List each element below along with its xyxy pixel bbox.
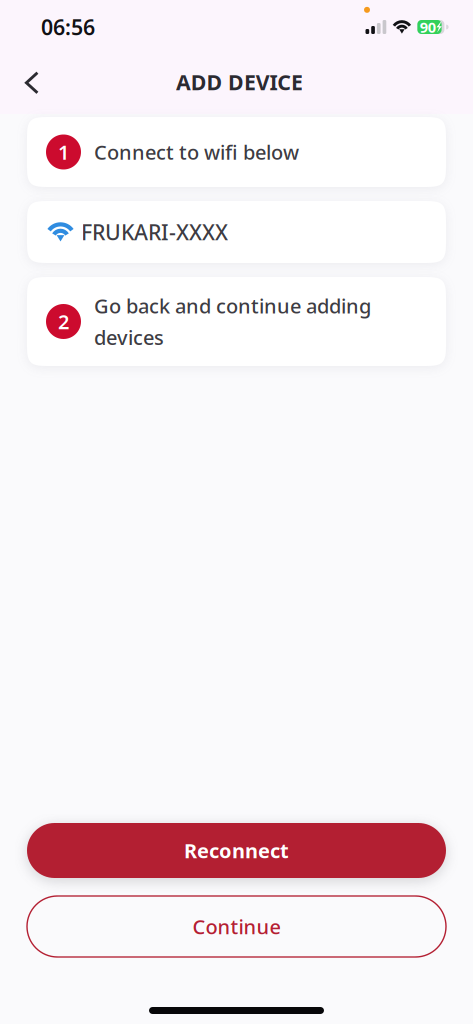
button[interactable]: FRUKARI-XXXX [27,201,446,263]
staticText: Connect to wifi below [94,139,299,165]
button[interactable]: Reconnect [27,823,446,878]
staticText: Go back and continue adding devices [94,292,371,350]
button[interactable]: Continue [27,896,446,957]
staticText: 2 [58,308,69,335]
staticText: Continue [192,913,280,940]
staticText: FRUKARI-XXXX [81,218,228,246]
staticText: ADD DEVICE [176,68,303,96]
button[interactable]: Back [9,59,55,105]
staticText: 06:56 [41,13,95,41]
staticText: 1 [58,139,69,165]
button[interactable]: 1 [27,117,446,187]
staticText: Reconnect [184,837,289,864]
staticText: 90 [420,17,436,37]
button[interactable]: 2 [27,277,446,366]
